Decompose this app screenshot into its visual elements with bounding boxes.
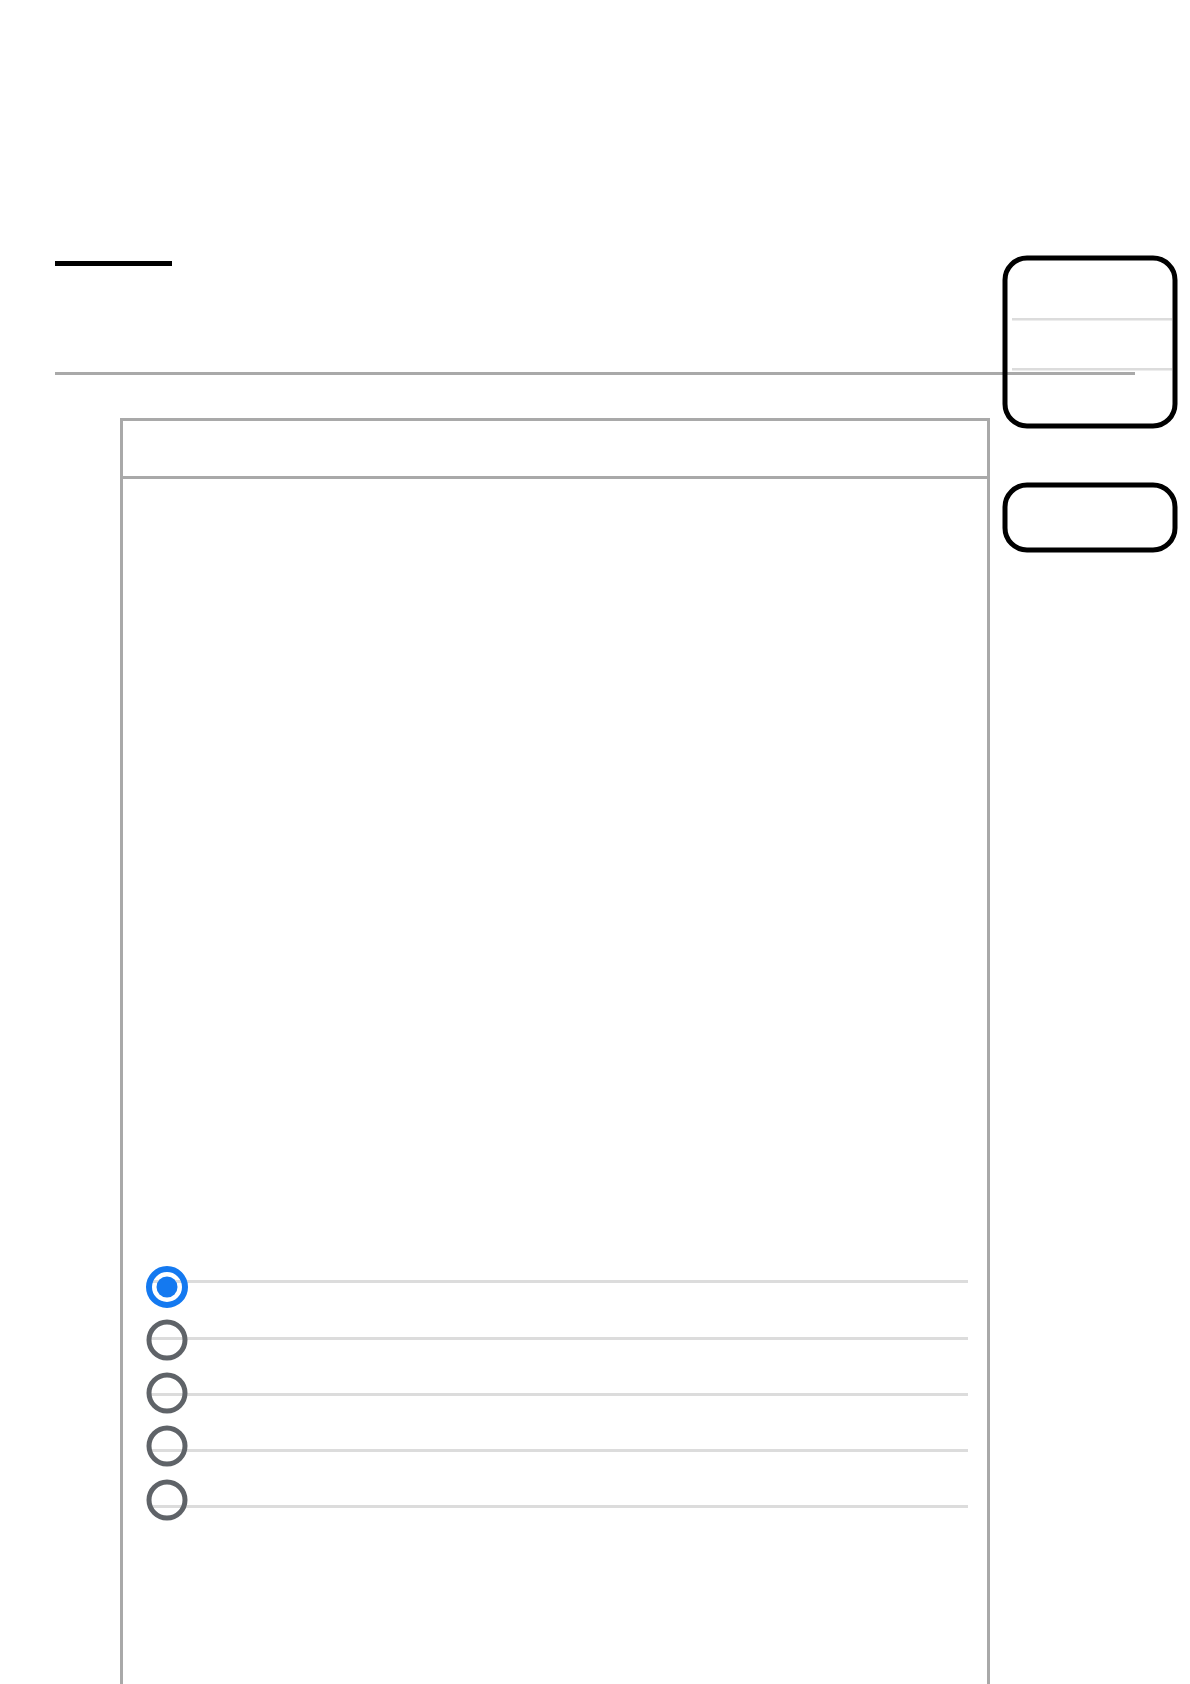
button[interactable]: Option 5 [125, 1482, 985, 1536]
button[interactable]: Option 3 [125, 1370, 985, 1424]
button[interactable]: Option 4 [125, 1426, 985, 1480]
button[interactable]: Option 1 [125, 1260, 985, 1314]
button[interactable]: Option 2 [125, 1314, 985, 1368]
